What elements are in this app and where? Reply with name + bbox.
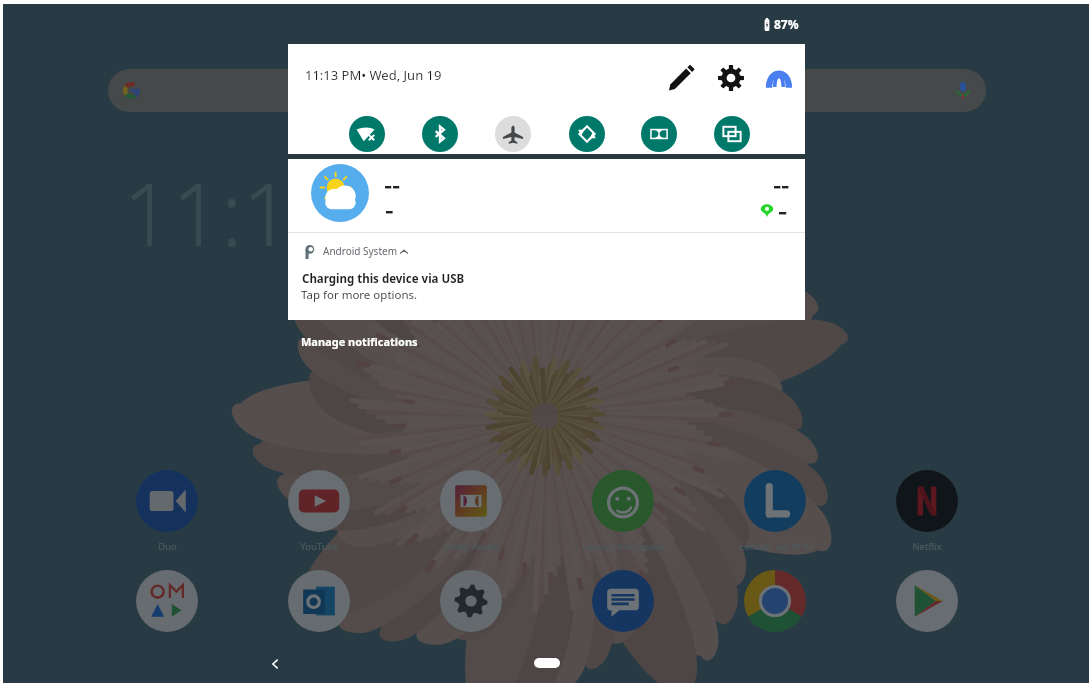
button[interactable]: Duo [117, 464, 217, 548]
button[interactable]: Android System [288, 233, 805, 320]
staticText: 11:13 PM• Wed, Jun 19 [305, 66, 442, 84]
button[interactable]: Home [534, 658, 560, 668]
staticText: Lenovo Kids Space [582, 540, 665, 553]
button[interactable]: App [421, 564, 521, 648]
button[interactable]: YouTube [269, 464, 369, 548]
button[interactable]: Netflix [877, 464, 977, 548]
button[interactable]: Account [765, 63, 793, 91]
button[interactable]: Lenovo Kids Space [573, 464, 673, 548]
button[interactable] [288, 159, 805, 232]
button[interactable]: App [725, 564, 825, 648]
staticText: Duo [158, 540, 177, 553]
button[interactable]: App [877, 564, 977, 648]
staticText: Dolby Audio [444, 540, 499, 553]
button[interactable]: Lenovo Tab M10 [725, 464, 825, 548]
staticText: Lenovo Tab M10 [739, 540, 812, 553]
button[interactable]: Manage notifications [301, 334, 418, 349]
staticText: Netflix [912, 540, 942, 553]
button[interactable]: Bluetooth [422, 116, 458, 152]
button[interactable]: Wi-Fi off [349, 116, 385, 152]
button[interactable]: Back [264, 653, 286, 675]
button[interactable]: Dolby [641, 116, 677, 152]
staticText: Tap for more options. [301, 287, 418, 303]
button[interactable]: Voice search [108, 69, 986, 112]
button[interactable]: Dolby Audio [421, 464, 521, 548]
button[interactable]: Airplane mode [495, 116, 531, 152]
button[interactable]: Edit [665, 62, 698, 95]
staticText: YouTube [300, 540, 339, 553]
button[interactable]: App [117, 564, 217, 648]
button[interactable]: App [269, 564, 369, 648]
staticText: Android System [323, 244, 398, 258]
button[interactable]: Settings [712, 59, 750, 97]
button[interactable]: Auto-rotate [569, 116, 605, 152]
button[interactable]: Split screen [714, 116, 750, 152]
staticText: 11:13 [123, 154, 341, 271]
button[interactable]: App [573, 564, 673, 648]
staticText: Charging this device via USB [302, 271, 465, 287]
other: Voice search [953, 80, 973, 100]
staticText: 87% [774, 16, 799, 32]
